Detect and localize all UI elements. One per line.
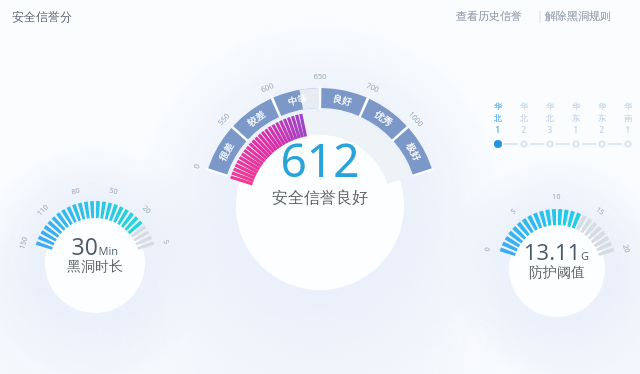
button[interactable]: Region selector	[490, 100, 640, 156]
button[interactable]	[27, 192, 163, 292]
button[interactable]	[545, 9, 621, 29]
button[interactable]	[202, 88, 438, 230]
button[interactable]	[491, 200, 623, 298]
button[interactable]	[456, 9, 532, 29]
